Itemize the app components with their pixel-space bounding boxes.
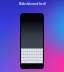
staticText: Make data work for all [19,2,46,5]
